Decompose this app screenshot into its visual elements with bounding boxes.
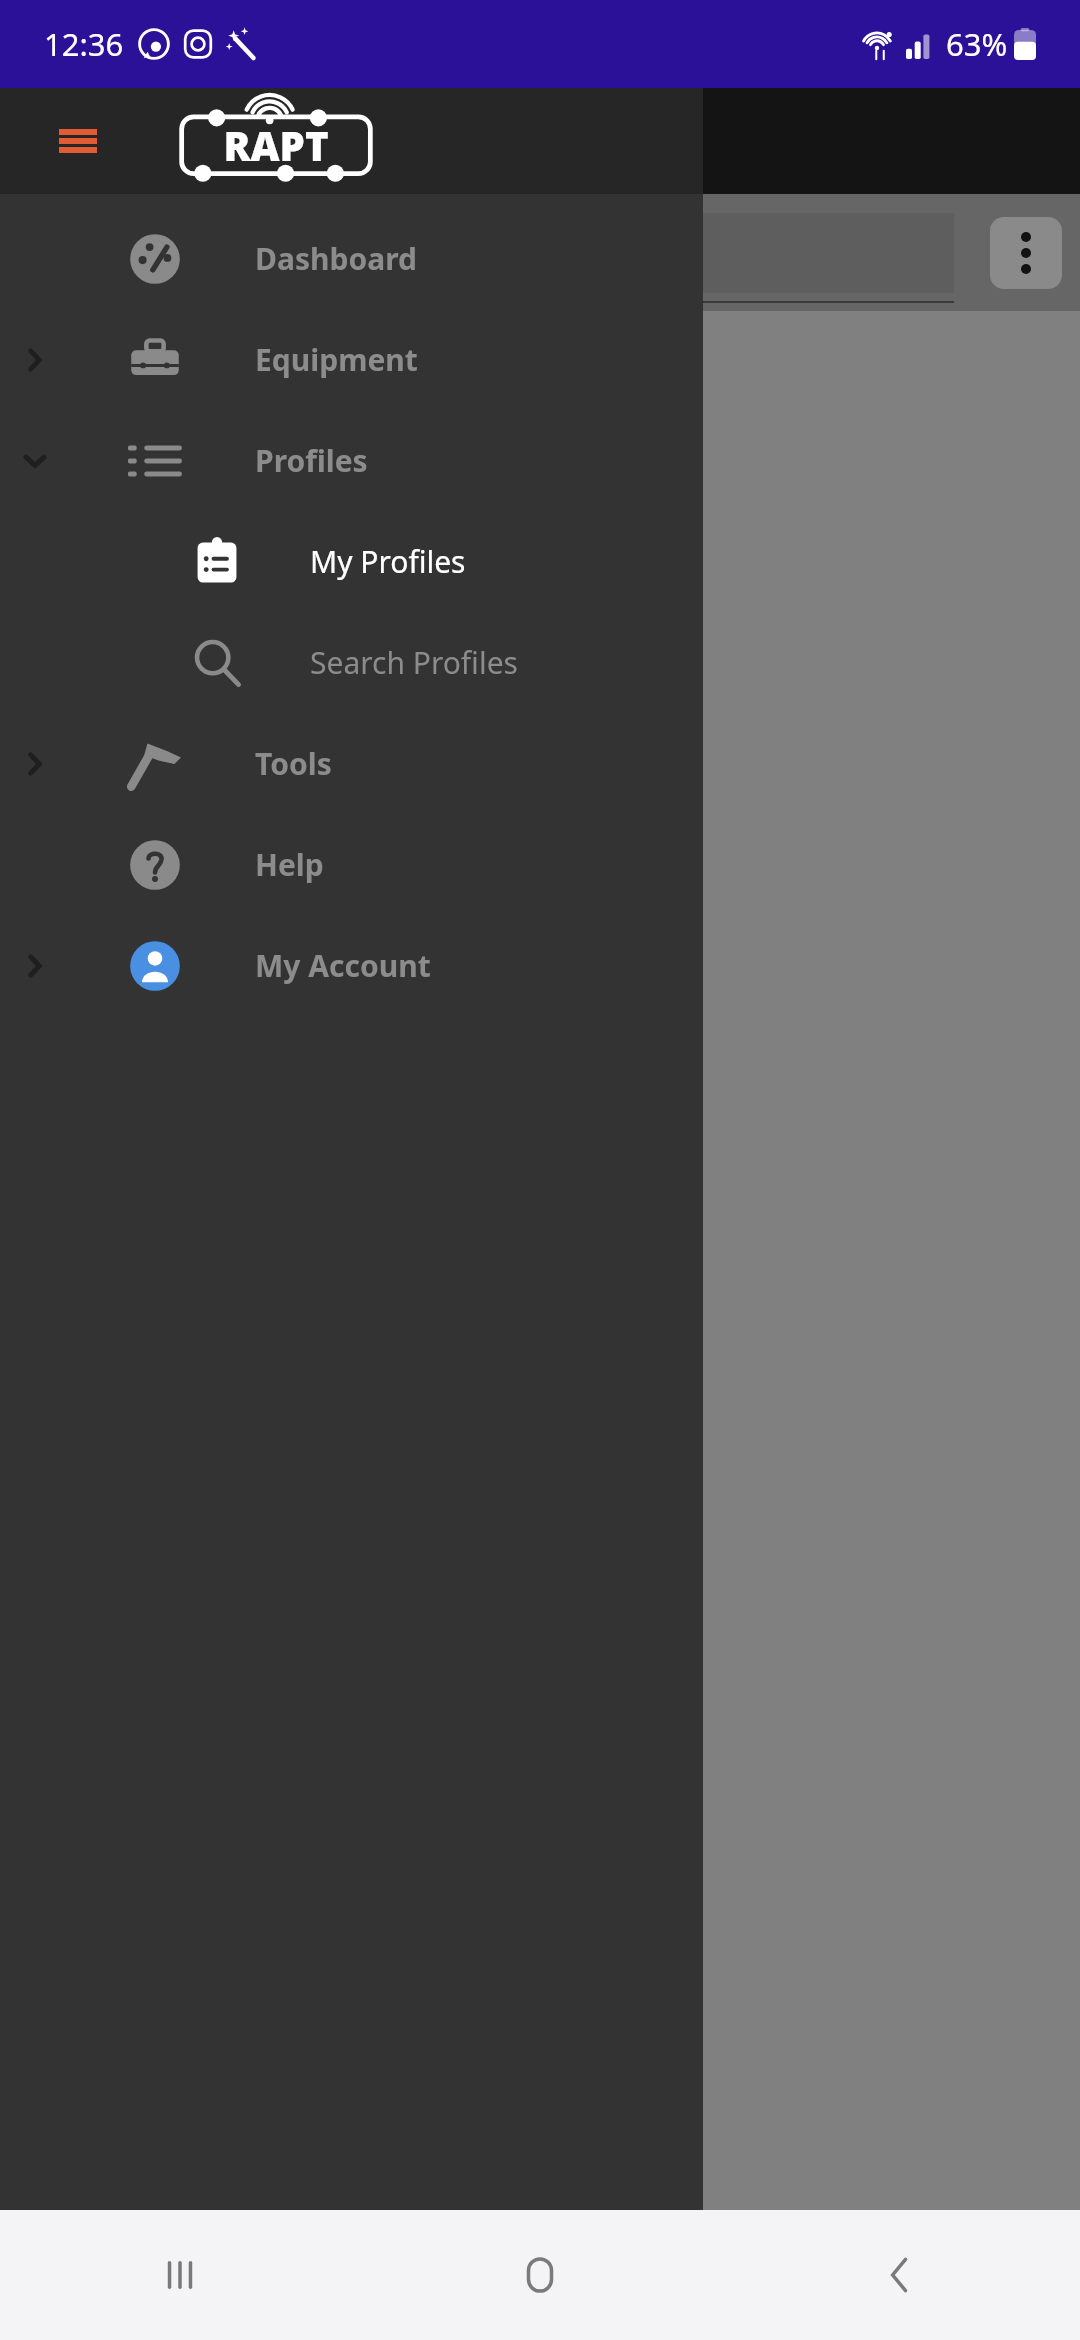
staticText: Enter search criteria (40, 339, 295, 376)
staticText: Help (255, 844, 324, 885)
button[interactable]: More options (990, 217, 1062, 289)
staticText: RAPT (223, 118, 329, 172)
staticText: Search Profiles (310, 642, 518, 683)
staticText: My Account (255, 945, 431, 986)
button[interactable]: Back (720, 2210, 1080, 2340)
staticText: Dashboard (255, 238, 417, 279)
button[interactable]: Help (0, 814, 703, 915)
button[interactable]: Profiles (0, 410, 703, 511)
staticText: Profiles (255, 440, 368, 481)
button[interactable]: Equipment (0, 309, 703, 410)
staticText: Equipment (255, 339, 418, 380)
button[interactable]: Home (360, 2210, 720, 2340)
button[interactable]: Recent apps (0, 2210, 360, 2340)
button[interactable]: Tools (0, 713, 703, 814)
staticText: 63% (946, 23, 1008, 65)
staticText: My Profiles (310, 541, 466, 582)
staticText: 12:36 (44, 23, 124, 65)
button[interactable]: My Profiles (0, 511, 703, 612)
button[interactable]: Dashboard (0, 208, 703, 309)
button[interactable]: Search Profiles (0, 612, 703, 713)
button[interactable]: My Account (0, 915, 703, 1016)
staticText: Tools (255, 743, 332, 784)
button[interactable]: Open navigation menu (50, 113, 106, 169)
